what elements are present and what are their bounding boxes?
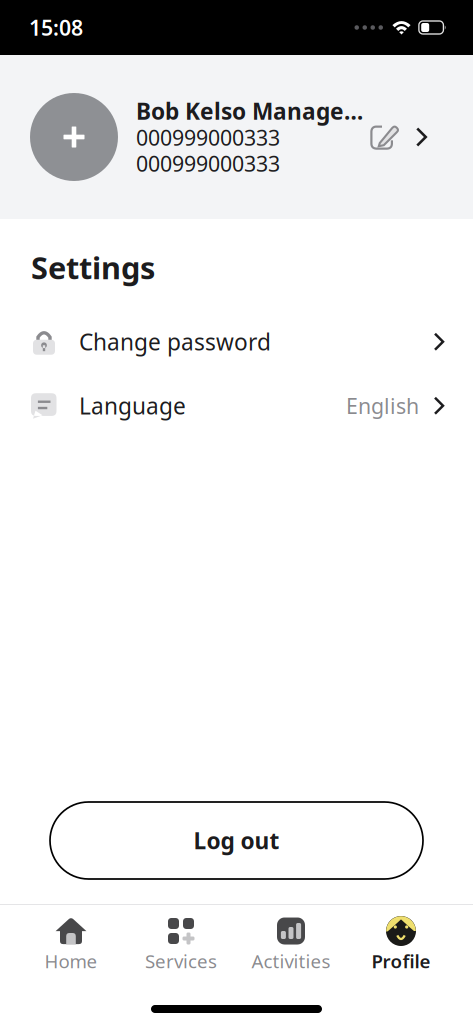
button[interactable]: Activities xyxy=(236,917,346,974)
staticText: Log out xyxy=(193,825,279,855)
button[interactable]: Profile xyxy=(346,917,456,974)
button[interactable]: Services xyxy=(126,917,236,974)
button[interactable]: Bob Kelso Manager T… xyxy=(0,55,473,219)
staticText: Home xyxy=(44,949,97,973)
staticText: Settings xyxy=(31,247,155,288)
staticText: English xyxy=(346,392,419,420)
button[interactable]: Change password xyxy=(0,310,473,374)
staticText: 000999000333 xyxy=(136,123,280,152)
staticText: 15:08 xyxy=(29,13,83,42)
button[interactable]: Home xyxy=(16,917,126,974)
staticText: Activities xyxy=(251,949,330,973)
staticText: Profile xyxy=(371,949,430,973)
button[interactable]: Language xyxy=(0,374,473,438)
staticText: 000999000333 xyxy=(136,149,280,178)
staticText: Bob Kelso Manager T… xyxy=(136,96,368,126)
staticText: Change password xyxy=(79,327,271,357)
staticText: Language xyxy=(79,391,186,421)
button[interactable]: Log out xyxy=(50,802,423,879)
staticText: Services xyxy=(145,949,217,973)
